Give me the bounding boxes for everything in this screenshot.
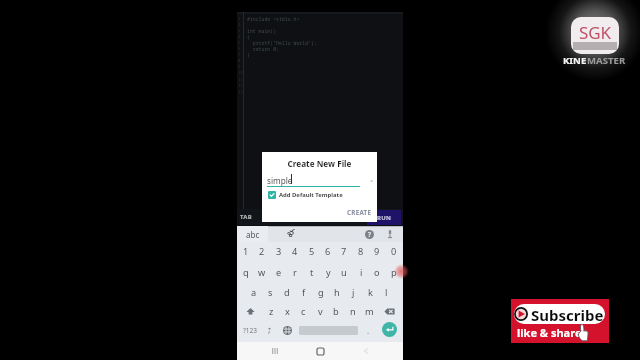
button[interactable]: 1 — [238, 242, 254, 260]
staticText: z — [269, 305, 274, 318]
staticText: CREATE — [347, 208, 372, 216]
button[interactable]: Change language — [281, 322, 294, 339]
staticText: h — [334, 286, 340, 299]
staticText: r — [293, 266, 297, 279]
button[interactable]: o — [369, 263, 385, 281]
staticText: u — [341, 266, 347, 279]
staticText: 8 — [238, 58, 241, 63]
button[interactable] — [263, 322, 276, 339]
button[interactable]: f — [295, 283, 312, 301]
staticText: ? — [368, 230, 372, 239]
staticText: return 0; — [247, 46, 279, 53]
button[interactable]: Voice input — [385, 229, 395, 239]
staticText: i — [360, 266, 363, 279]
button[interactable]: v — [312, 302, 328, 320]
staticText: printf("Hello World"); — [247, 40, 317, 47]
staticText: 5 — [238, 40, 241, 45]
staticText: d — [284, 286, 290, 299]
button[interactable]: s — [262, 283, 279, 301]
button[interactable]: Shift — [242, 303, 258, 319]
button[interactable]: t — [304, 263, 320, 281]
staticText: a — [251, 286, 257, 299]
staticText: b — [333, 305, 339, 318]
staticText: simple — [267, 175, 293, 186]
button[interactable]: c — [295, 302, 311, 320]
staticText: 11 — [238, 77, 243, 82]
button[interactable]: n — [345, 302, 361, 320]
button[interactable]: 6 — [320, 242, 336, 260]
button[interactable]: r — [287, 263, 303, 281]
button[interactable]: 8 — [353, 242, 369, 260]
staticText: s — [268, 286, 273, 299]
button[interactable]: Back — [358, 343, 374, 359]
button[interactable]: m — [361, 302, 377, 320]
button[interactable]: Recents — [267, 343, 283, 359]
button[interactable]: Subscribe — [511, 299, 609, 343]
button[interactable]: 3 — [271, 242, 287, 260]
button[interactable]: 4 — [287, 242, 303, 260]
staticText: c — [301, 305, 306, 318]
staticText: q — [243, 266, 249, 279]
button[interactable]: Backspace — [381, 303, 397, 319]
button[interactable]: 7 — [336, 242, 352, 260]
button[interactable]: 2 — [254, 242, 270, 260]
staticText: Create New File — [262, 158, 377, 169]
staticText: TAB — [240, 213, 253, 221]
button[interactable]: g — [312, 283, 329, 301]
button[interactable]: h — [328, 283, 345, 301]
staticText: e — [276, 266, 282, 279]
button[interactable]: abc — [237, 226, 268, 242]
staticText: ?123 — [243, 326, 257, 335]
staticText: 4 — [238, 34, 241, 39]
button[interactable]: RUN — [367, 210, 401, 225]
button[interactable]: . — [362, 322, 375, 339]
button[interactable]: p — [386, 263, 402, 281]
staticText: 13 — [238, 89, 243, 94]
button[interactable]: 9 — [369, 242, 385, 260]
button[interactable]: ?123 — [240, 322, 260, 339]
staticText: 10 — [238, 70, 243, 75]
button[interactable]: ళ — [279, 226, 303, 242]
staticText: RUN — [377, 214, 392, 222]
button[interactable]: e — [271, 263, 287, 281]
button[interactable]: a — [245, 283, 262, 301]
staticText: { — [247, 34, 250, 41]
button[interactable]: j — [345, 283, 362, 301]
button[interactable]: i — [353, 263, 369, 281]
button[interactable]: k — [362, 283, 379, 301]
button[interactable]: Enter — [382, 322, 397, 337]
button[interactable]: 5 — [304, 242, 320, 260]
staticText: int main() — [247, 28, 277, 35]
button[interactable]: d — [278, 283, 295, 301]
staticText: ళ — [287, 227, 295, 242]
button[interactable]: l — [378, 283, 395, 301]
button[interactable]: x — [279, 302, 295, 320]
button[interactable]: Add Default Template — [268, 191, 343, 199]
button[interactable]: CREATE — [347, 208, 372, 216]
button[interactable]: b — [328, 302, 344, 320]
button[interactable]: w — [254, 263, 270, 281]
button[interactable]: Home — [312, 343, 328, 359]
staticText: 6 — [325, 245, 331, 258]
staticText: 3 — [238, 28, 241, 33]
button[interactable]: q — [238, 263, 254, 281]
staticText: abc — [246, 229, 260, 240]
button[interactable]: z — [263, 302, 279, 320]
staticText: . — [367, 325, 370, 336]
button[interactable]: 0 — [386, 242, 402, 260]
button[interactable]: y — [320, 263, 336, 281]
staticText: 5 — [309, 245, 315, 258]
staticText: f — [302, 286, 306, 299]
staticText: k — [368, 286, 373, 299]
staticText: Subscribe — [531, 305, 604, 324]
staticText: l — [385, 286, 388, 299]
staticText: 2 — [238, 22, 241, 27]
staticText: j — [352, 286, 355, 299]
button[interactable]: TAB — [240, 213, 253, 221]
staticText: 0 — [391, 245, 397, 258]
staticText: KINE — [563, 54, 587, 67]
staticText: 3 — [276, 245, 282, 258]
button[interactable]: Help — [365, 230, 374, 239]
button[interactable]: u — [336, 263, 352, 281]
